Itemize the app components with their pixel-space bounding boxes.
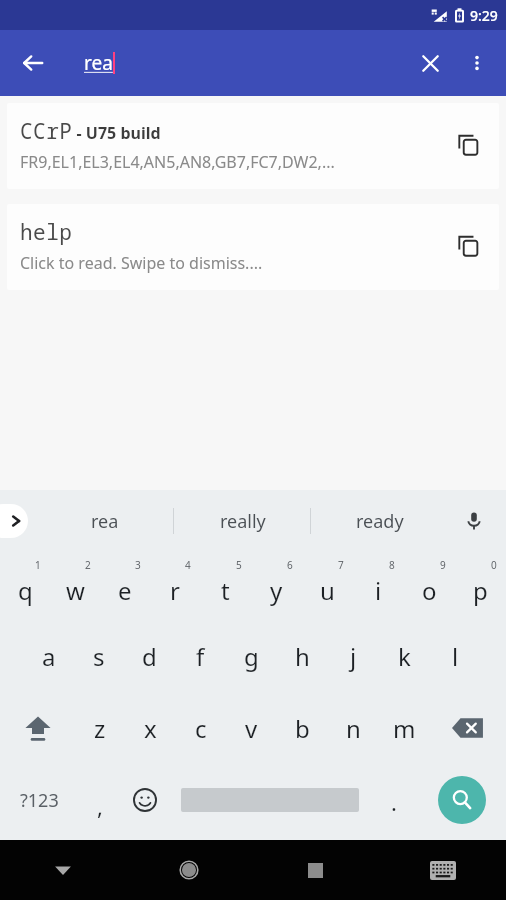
button[interactable]: v [226, 692, 277, 764]
button[interactable]: z [75, 692, 125, 764]
button[interactable]: a [24, 620, 74, 692]
button[interactable]: k [379, 620, 430, 692]
button[interactable]: c [175, 692, 226, 764]
staticText: g [244, 640, 259, 673]
button[interactable]: x [125, 692, 175, 764]
staticText: 7 [338, 558, 344, 572]
button[interactable]: b [277, 692, 328, 764]
staticText: x [144, 712, 157, 745]
button[interactable]: Back [10, 40, 56, 86]
button[interactable]: Home [126, 840, 252, 900]
button[interactable]: q [0, 552, 50, 620]
staticText: k [398, 640, 411, 673]
button[interactable]: really [174, 490, 311, 552]
button[interactable]: , [78, 764, 121, 836]
staticText: c [195, 712, 207, 745]
button[interactable]: Backspace [430, 692, 506, 764]
staticText: v [245, 712, 258, 745]
button[interactable]: Copy [447, 224, 491, 268]
staticText: FR9,EL1,EL3,EL4,AN5,AN8,GB7,FC7,DW2,... [20, 151, 335, 173]
staticText: f [196, 640, 205, 673]
button[interactable]: t [200, 552, 251, 620]
staticText: rea [84, 50, 113, 76]
staticText: CCrP - U75 build [20, 117, 161, 146]
staticText: ?123 [20, 788, 59, 813]
button[interactable]: ?123 [0, 764, 78, 836]
button[interactable]: Space [169, 764, 371, 836]
staticText: n [346, 712, 361, 745]
button[interactable]: u [302, 552, 353, 620]
button[interactable]: s [74, 620, 124, 692]
staticText: 2 [85, 558, 91, 572]
staticText: y [270, 574, 283, 607]
staticText: 4 [185, 558, 191, 572]
button[interactable]: l [430, 620, 481, 692]
button[interactable]: help [7, 204, 499, 290]
button[interactable]: i [353, 552, 404, 620]
staticText: b [295, 712, 310, 745]
button[interactable]: w [50, 552, 100, 620]
staticText: h [295, 640, 310, 673]
staticText: p [473, 574, 488, 607]
button[interactable]: rea [36, 490, 174, 552]
button[interactable]: . [371, 764, 417, 836]
button[interactable]: Copy [447, 123, 491, 167]
staticText: m [393, 712, 416, 745]
button[interactable]: Search [417, 764, 506, 836]
staticText: 0 [491, 558, 497, 572]
staticText: u [320, 574, 335, 607]
button[interactable]: r [150, 552, 200, 620]
button[interactable]: More suggestions [0, 504, 28, 538]
button[interactable]: CCrP - U75 build [7, 103, 499, 189]
staticText: 6 [287, 558, 293, 572]
staticText: q [18, 574, 33, 607]
staticText: l [452, 640, 459, 673]
staticText: Click to read. Swipe to dismiss.... [20, 252, 263, 274]
staticText: s [93, 640, 105, 673]
staticText: d [142, 640, 157, 673]
button[interactable]: h [277, 620, 328, 692]
staticText: 5 [236, 558, 242, 572]
button[interactable]: m [379, 692, 430, 764]
button[interactable]: j [328, 620, 379, 692]
button[interactable]: More options [456, 42, 498, 84]
staticText: really [220, 509, 266, 534]
button[interactable]: Clear [408, 41, 452, 85]
button[interactable]: Switch keyboard [379, 840, 506, 900]
staticText: w [66, 574, 85, 607]
staticText: t [221, 574, 230, 607]
staticText: 8 [389, 558, 395, 572]
staticText: 1 [35, 558, 41, 572]
staticText: e [118, 574, 132, 607]
staticText: ready [356, 509, 404, 534]
staticText: r [170, 574, 180, 607]
button[interactable]: ready [311, 490, 448, 552]
button[interactable]: Recents [252, 840, 379, 900]
staticText: 9:29 [470, 6, 498, 25]
button[interactable]: Hide keyboard [0, 840, 126, 900]
staticText: . [391, 787, 397, 817]
button[interactable]: f [175, 620, 226, 692]
button[interactable]: o [404, 552, 455, 620]
button[interactable]: Shift [0, 692, 75, 764]
staticText: i [375, 574, 382, 607]
staticText: help [20, 218, 73, 247]
staticText: o [422, 574, 437, 607]
staticText: , [97, 791, 103, 821]
staticText: 9 [440, 558, 446, 572]
staticText: rea [91, 509, 119, 534]
staticText: a [42, 640, 56, 673]
button[interactable]: n [328, 692, 379, 764]
staticText: 3 [135, 558, 141, 572]
button[interactable]: p [455, 552, 506, 620]
staticText: z [94, 712, 106, 745]
button[interactable]: Voice input [448, 490, 500, 552]
button[interactable]: g [226, 620, 277, 692]
button[interactable]: d [124, 620, 175, 692]
button[interactable]: rea [84, 43, 384, 83]
button[interactable]: e [100, 552, 150, 620]
button[interactable]: Emoji [121, 764, 169, 836]
staticText: j [350, 640, 357, 673]
button[interactable]: y [251, 552, 302, 620]
